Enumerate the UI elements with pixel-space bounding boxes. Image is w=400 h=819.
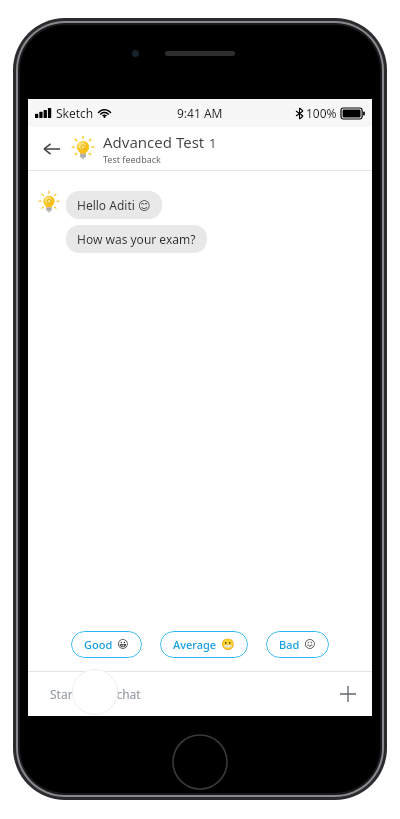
- staticText: 😀: [117, 638, 129, 651]
- button[interactable]: Average: [160, 631, 248, 658]
- staticText: 100%: [306, 105, 337, 121]
- button[interactable]: Add attachment: [330, 676, 366, 712]
- button[interactable]: Bad: [266, 631, 329, 658]
- staticText: Bad: [279, 637, 300, 652]
- staticText: Test feedback: [103, 153, 161, 165]
- button[interactable]: Hello Aditi 😊: [66, 191, 162, 219]
- staticText: Good: [84, 637, 113, 652]
- button[interactable]: Start a new chat: [28, 672, 372, 716]
- staticText: 😬: [221, 638, 235, 651]
- staticText: 9:41 AM: [177, 105, 223, 121]
- staticText: Average: [173, 637, 217, 652]
- button[interactable]: Good: [71, 631, 142, 658]
- staticText: Advanced Test: [103, 132, 205, 152]
- staticText: Start a new chat: [50, 686, 141, 702]
- staticText: Hello Aditi 😊: [77, 197, 151, 213]
- staticText: 😖: [304, 638, 316, 651]
- button[interactable]: Back: [36, 133, 68, 165]
- staticText: Sketch: [56, 105, 94, 121]
- staticText: 1: [209, 134, 217, 152]
- staticText: How was your exam?: [77, 231, 196, 247]
- button[interactable]: How was your exam?: [66, 225, 207, 253]
